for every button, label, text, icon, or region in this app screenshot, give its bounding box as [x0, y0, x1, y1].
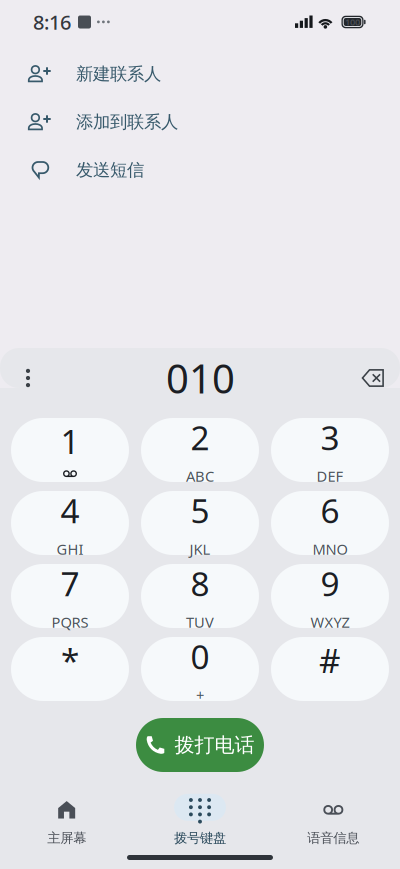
staticText: 新建联系人 — [76, 63, 161, 85]
staticText: 5 — [190, 488, 209, 532]
staticText: 发送短信 — [76, 159, 144, 181]
staticText: 6 — [320, 488, 339, 532]
button[interactable]: 4 — [11, 491, 129, 555]
button[interactable]: 3 — [271, 418, 389, 482]
button[interactable]: 1 — [11, 418, 129, 482]
staticText: 拨打电话 — [174, 733, 254, 757]
button[interactable]: 拨打电话 — [136, 718, 264, 772]
staticText: 0 — [190, 634, 209, 678]
button[interactable]: 更多选项 — [6, 356, 50, 400]
staticText: ABC — [186, 466, 214, 486]
button[interactable]: 拨号键盘 — [133, 796, 267, 846]
staticText: 拨号键盘 — [174, 830, 226, 846]
staticText: GHI — [56, 539, 83, 559]
button[interactable]: 7 — [11, 564, 129, 628]
staticText: # — [319, 638, 341, 682]
staticText: * — [61, 638, 79, 682]
button[interactable]: 添加到联系人 — [0, 98, 400, 146]
staticText: JKL — [189, 539, 210, 559]
staticText: 010 — [166, 351, 235, 404]
button[interactable]: 5 — [141, 491, 259, 555]
button[interactable]: 2 — [141, 418, 259, 482]
button[interactable]: 8 — [141, 564, 259, 628]
button[interactable]: 0 — [141, 637, 259, 701]
staticText: + — [196, 685, 204, 705]
button[interactable]: 删除 — [351, 356, 395, 400]
staticText: DEF — [316, 466, 343, 486]
button[interactable]: 新建联系人 — [0, 50, 400, 98]
staticText: 1 — [60, 419, 79, 463]
staticText: 添加到联系人 — [76, 111, 178, 133]
button[interactable]: 9 — [271, 564, 389, 628]
staticText: WXYZ — [310, 612, 349, 632]
staticText: 语音信息 — [307, 830, 359, 846]
staticText: 7 — [60, 561, 79, 605]
staticText: 8:16 — [33, 9, 71, 35]
staticText: PQRS — [51, 612, 88, 632]
staticText: 3 — [320, 415, 339, 459]
button[interactable]: * — [11, 637, 129, 701]
button[interactable]: 主屏幕 — [0, 796, 133, 846]
staticText: MNO — [312, 539, 347, 559]
staticText: 主屏幕 — [47, 830, 86, 846]
button[interactable]: 6 — [271, 491, 389, 555]
staticText: TUV — [186, 612, 214, 632]
staticText: 8 — [190, 561, 209, 605]
staticText: 4 — [60, 488, 79, 532]
staticText: 100 — [345, 16, 360, 28]
button[interactable]: 语音信息 — [267, 796, 400, 846]
staticText: 9 — [320, 561, 339, 605]
button[interactable]: 发送短信 — [0, 146, 400, 194]
button[interactable]: # — [271, 637, 389, 701]
staticText: 2 — [190, 415, 209, 459]
